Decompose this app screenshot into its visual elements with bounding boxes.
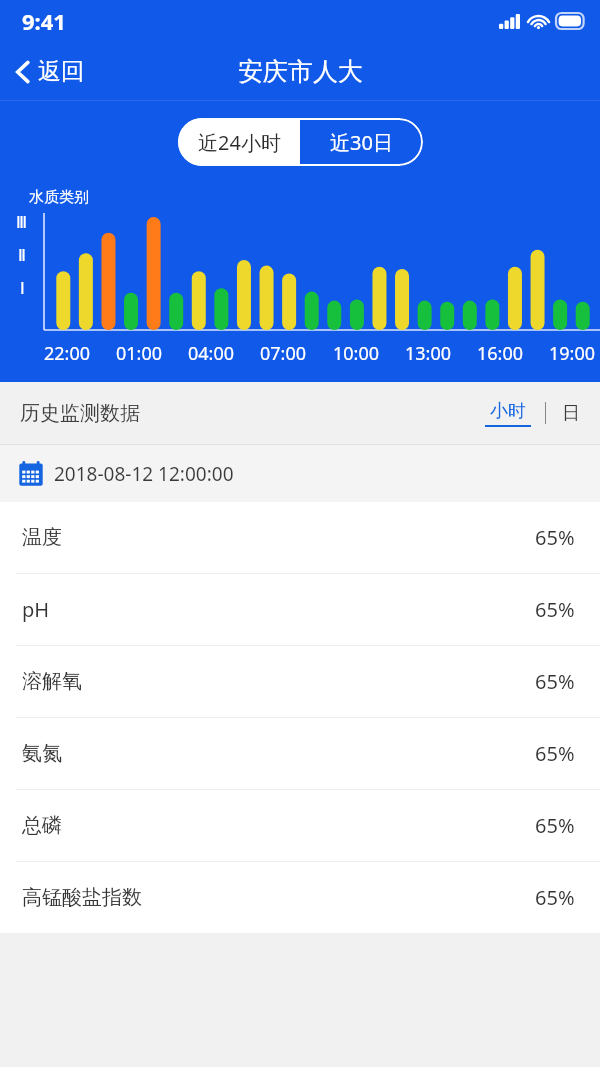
staticText: 13:00 [405, 341, 452, 366]
staticText: 07:00 [260, 341, 307, 366]
staticText: 04:00 [188, 341, 235, 366]
button[interactable]: 近30日 [300, 118, 423, 166]
button[interactable]: 小时 [485, 400, 531, 427]
staticText: 10:00 [333, 341, 380, 366]
staticText: pH [22, 596, 50, 623]
staticText: 65% [535, 812, 575, 839]
staticText: 水质类别 [29, 188, 89, 207]
staticText: 近30日 [330, 129, 393, 156]
staticText: 高锰酸盐指数 [22, 885, 142, 910]
staticText: 65% [535, 524, 575, 551]
staticText: 安庆市人大 [238, 56, 363, 87]
button[interactable]: 高锰酸盐指数 [0, 862, 600, 933]
staticText: 65% [535, 884, 575, 911]
staticText: 日 [562, 402, 580, 425]
staticText: 历史监测数据 [20, 401, 140, 426]
staticText: 2018-08-12 12:00:00 [54, 461, 234, 487]
button[interactable]: pH [0, 574, 600, 645]
button[interactable]: 近24小时 [178, 118, 300, 166]
staticText: 氨氮 [22, 741, 62, 766]
button[interactable]: 返回 [0, 51, 96, 92]
staticText: 22:00 [44, 341, 91, 366]
staticText: 01:00 [116, 341, 163, 366]
button[interactable]: 溶解氧 [0, 646, 600, 717]
button[interactable]: 氨氮 [0, 718, 600, 789]
staticText: 19:00 [549, 341, 596, 366]
staticText: 返回 [38, 57, 84, 86]
staticText: 16:00 [477, 341, 524, 366]
staticText: Ⅱ [18, 246, 26, 265]
staticText: Ⅲ [16, 213, 28, 232]
staticText: 65% [535, 668, 575, 695]
staticText: 65% [535, 596, 575, 623]
other: Pick date [18, 461, 44, 487]
staticText: 近24小时 [198, 129, 281, 156]
button[interactable]: Pick date [0, 445, 600, 502]
staticText: 总磷 [22, 813, 62, 838]
button[interactable]: 温度 [0, 502, 600, 573]
button[interactable]: 日 [562, 402, 580, 425]
staticText: 9:41 [22, 6, 66, 36]
staticText: 温度 [22, 525, 62, 550]
staticText: 溶解氧 [22, 669, 82, 694]
staticText: 65% [535, 740, 575, 767]
button[interactable]: 总磷 [0, 790, 600, 861]
staticText: Ⅰ [20, 279, 25, 298]
staticText: 小时 [490, 400, 526, 423]
